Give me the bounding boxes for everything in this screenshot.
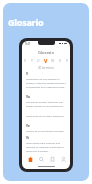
staticText: V [26, 72, 29, 76]
staticText: Ve [26, 124, 30, 128]
staticText: Vocabulario de una disciplina o materia,… [26, 78, 67, 88]
button[interactable]: V [42, 57, 49, 63]
button[interactable]: T [28, 57, 35, 63]
button[interactable]: Bookmarks [47, 155, 58, 164]
button[interactable]: Search [36, 155, 47, 164]
staticText: V [44, 57, 48, 63]
staticText: 30 terminos [38, 66, 54, 70]
staticText: 9:41 [25, 42, 31, 46]
staticText: Va [26, 95, 30, 99]
button[interactable]: Va [26, 95, 67, 115]
staticText: Vision general del proyecto que describe… [26, 142, 67, 152]
button[interactable]: Profile [58, 155, 69, 164]
staticText: S [24, 58, 26, 63]
staticText: Version de un documento revisado. [26, 130, 65, 133]
staticText: X [59, 58, 61, 63]
button[interactable]: Vi [26, 136, 67, 155]
staticText: Y [66, 58, 68, 63]
staticText: W [51, 58, 55, 63]
staticText: Vi [26, 136, 29, 140]
button[interactable]: Y [63, 57, 70, 63]
staticText: T [31, 58, 33, 63]
staticText: Glosario [38, 50, 54, 55]
staticText: U [37, 58, 40, 63]
button[interactable]: S [22, 57, 28, 63]
staticText: Variable de estudio: elemento que puede … [26, 101, 67, 107]
staticText: Verificacion de los datos obtenidos. [26, 115, 65, 118]
button[interactable]: Ve [26, 124, 67, 136]
button[interactable]: X [56, 57, 63, 63]
button[interactable]: Verificacion de los datos obtenidos. [26, 115, 67, 124]
button[interactable]: V [26, 72, 67, 95]
staticText: Glosario [8, 16, 44, 28]
button[interactable]: Home [24, 155, 36, 164]
button[interactable]: U [35, 57, 42, 63]
button[interactable]: W [49, 57, 56, 63]
